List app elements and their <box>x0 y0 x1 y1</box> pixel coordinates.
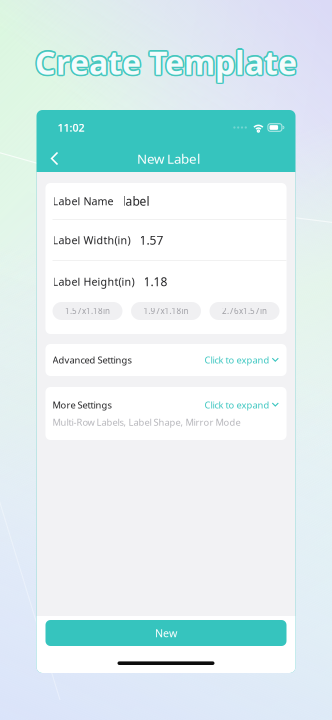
button[interactable]: Back <box>41 145 67 171</box>
staticText: 1.97x1.18in <box>143 306 188 316</box>
button[interactable]: More Settings <box>45 387 286 440</box>
staticText: label <box>122 193 149 209</box>
staticText: Create Template <box>35 43 297 85</box>
staticText: Create Template <box>36 42 298 85</box>
staticText: Label Width(in) <box>52 233 130 247</box>
staticText: Multi-Row Labels, Label Shape, Mirror Mo… <box>52 416 240 428</box>
button[interactable]: New <box>45 620 286 646</box>
button[interactable]: 2.76x1.57in <box>209 302 279 320</box>
staticText: New Label <box>137 150 200 167</box>
button[interactable]: 1.97x1.18in <box>131 302 201 320</box>
staticText: 2.76x1.57in <box>222 306 267 316</box>
staticText: Create Template <box>33 41 295 83</box>
staticText: 11:02 <box>57 120 84 135</box>
staticText: More Settings <box>52 399 111 411</box>
staticText: 1.18 <box>143 273 167 289</box>
staticText: Create Template <box>35 39 297 82</box>
staticText: Create Template <box>35 41 297 83</box>
button[interactable]: Advanced Settings <box>45 344 286 376</box>
staticText: Click to expand <box>204 354 269 366</box>
staticText: New <box>155 626 177 640</box>
staticText: 1.57 <box>139 232 163 248</box>
staticText: Label Name <box>52 194 113 208</box>
staticText: 1.57x1.18in <box>65 306 110 316</box>
button[interactable]: 1.57x1.18in <box>52 302 122 320</box>
staticText: Label Height(in) <box>52 274 134 289</box>
staticText: Create Template <box>37 41 299 83</box>
staticText: Create Template <box>34 40 296 82</box>
staticText: Click to expand <box>204 399 269 411</box>
staticText: Create Template <box>34 42 296 85</box>
staticText: Advanced Settings <box>52 354 131 366</box>
staticText: Create Template <box>36 40 298 82</box>
